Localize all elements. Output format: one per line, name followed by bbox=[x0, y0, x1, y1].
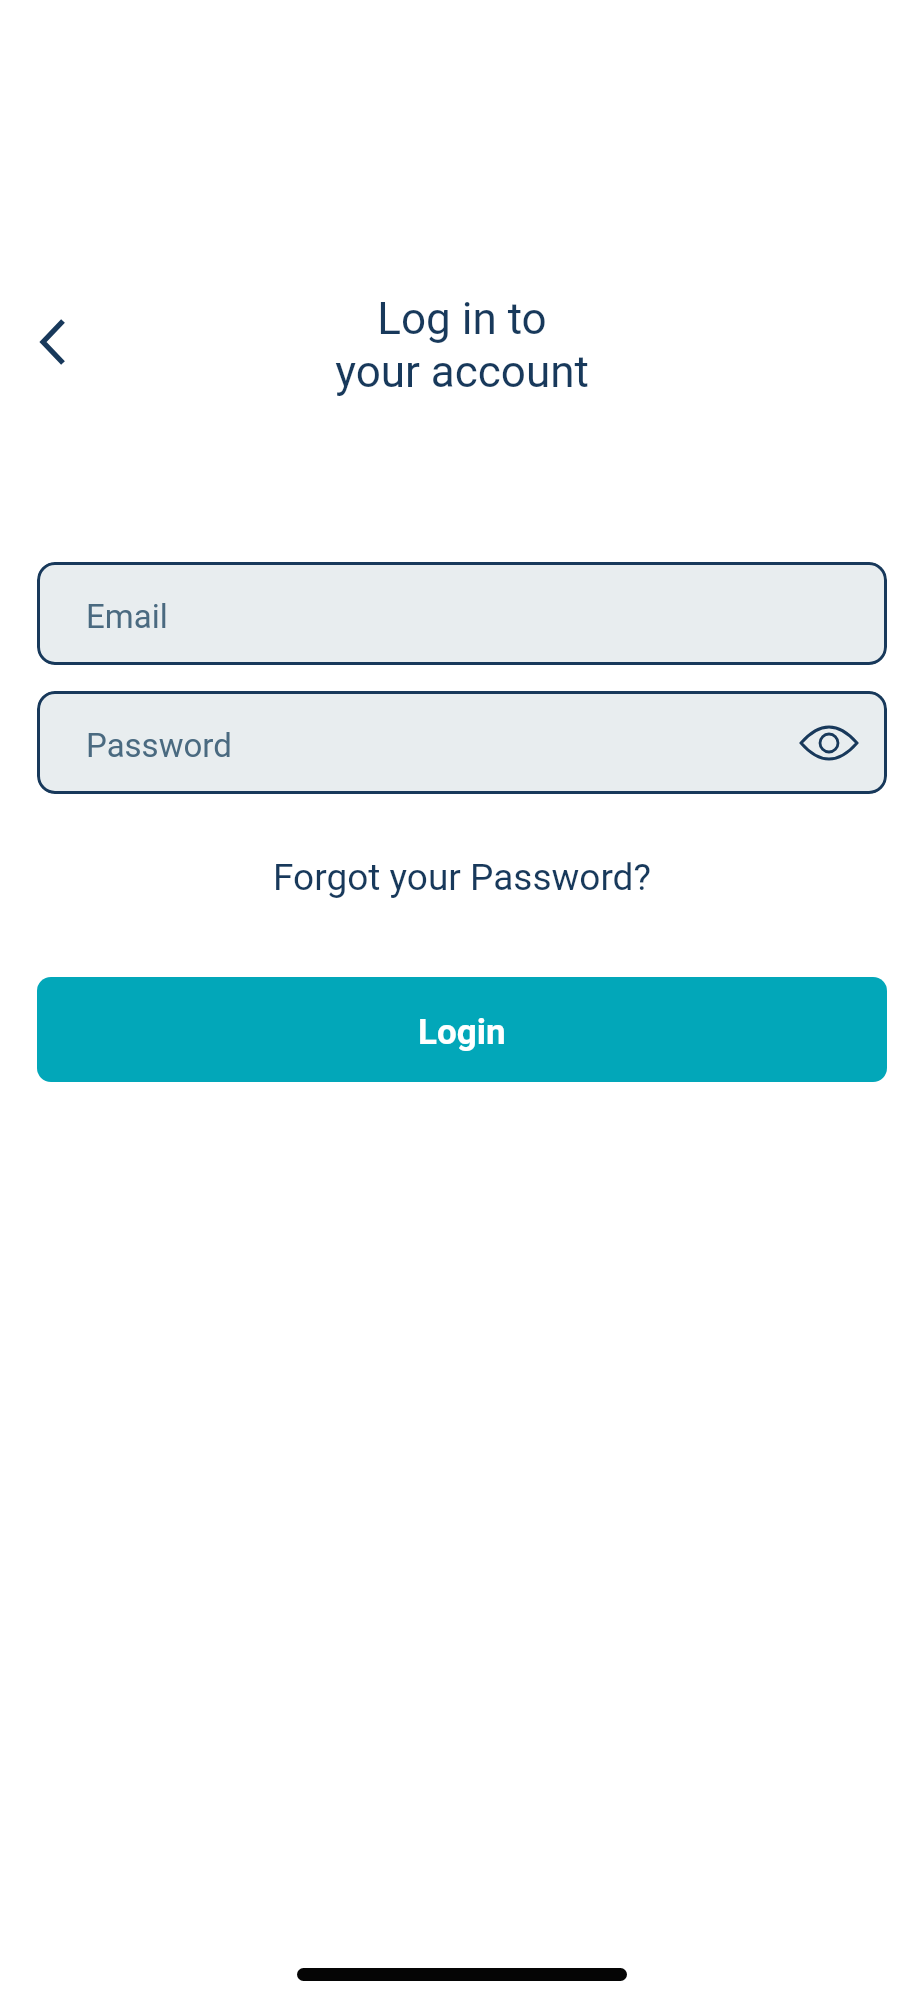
button[interactable]: Forgot your Password? bbox=[0, 856, 924, 899]
button[interactable]: Email bbox=[37, 562, 887, 665]
button[interactable] bbox=[21, 308, 85, 376]
button[interactable]: Login bbox=[37, 977, 887, 1082]
staticText: Log in to your account bbox=[0, 293, 924, 398]
button[interactable]: Password bbox=[37, 691, 887, 794]
staticText: Login bbox=[418, 1012, 506, 1053]
staticText: Password bbox=[86, 726, 232, 765]
staticText: Email bbox=[86, 597, 168, 636]
button[interactable] bbox=[799, 721, 859, 765]
